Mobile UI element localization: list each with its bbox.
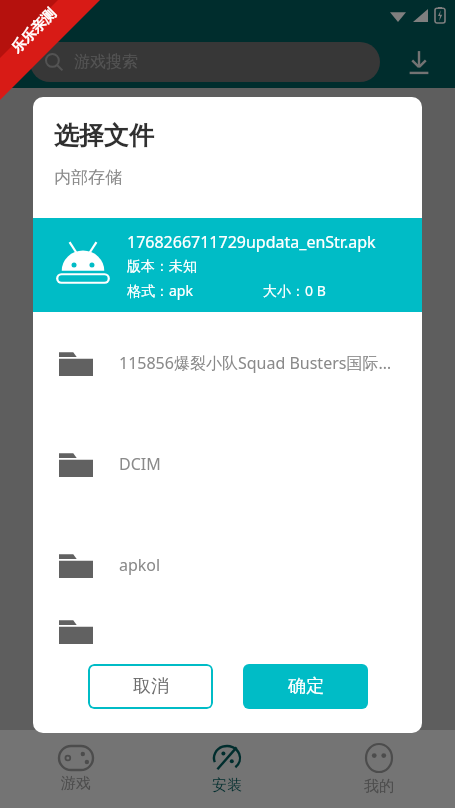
button[interactable]: DCIM	[33, 413, 422, 514]
staticText: 乐乐亲测	[8, 5, 60, 57]
staticText: apkol	[119, 554, 161, 576]
button[interactable]: 115856爆裂小队Squad Busters国际…	[33, 312, 422, 413]
button[interactable]: apkol	[33, 514, 422, 615]
staticText: 1768266711729updata_enStr.apk	[127, 231, 376, 253]
staticText: 游戏搜索	[74, 52, 138, 72]
staticText: 游戏	[61, 774, 91, 793]
staticText: 确定	[288, 675, 324, 698]
staticText: 取消	[133, 675, 169, 698]
staticText: 内部存储	[54, 167, 122, 188]
button[interactable]: 我的	[303, 730, 455, 808]
staticText: 格式：apk	[127, 281, 193, 300]
button[interactable]: 确定	[243, 664, 368, 709]
staticText: 选择文件	[54, 120, 154, 151]
button[interactable]: 安装	[151, 730, 303, 808]
staticText: 安装	[212, 776, 242, 795]
button[interactable]: 游戏搜索	[30, 42, 380, 82]
staticText: DCIM	[119, 453, 161, 475]
button[interactable]: 1768266711729updata_enStr.apk	[33, 218, 422, 312]
button[interactable]: 游戏	[0, 730, 151, 808]
staticText: 115856爆裂小队Squad Busters国际…	[119, 352, 392, 374]
button[interactable]: 取消	[88, 664, 213, 709]
staticText: 大小：0 B	[263, 281, 326, 300]
button[interactable]: Downloads	[401, 44, 437, 80]
staticText: 我的	[364, 777, 394, 796]
staticText: 版本：未知	[127, 258, 197, 276]
